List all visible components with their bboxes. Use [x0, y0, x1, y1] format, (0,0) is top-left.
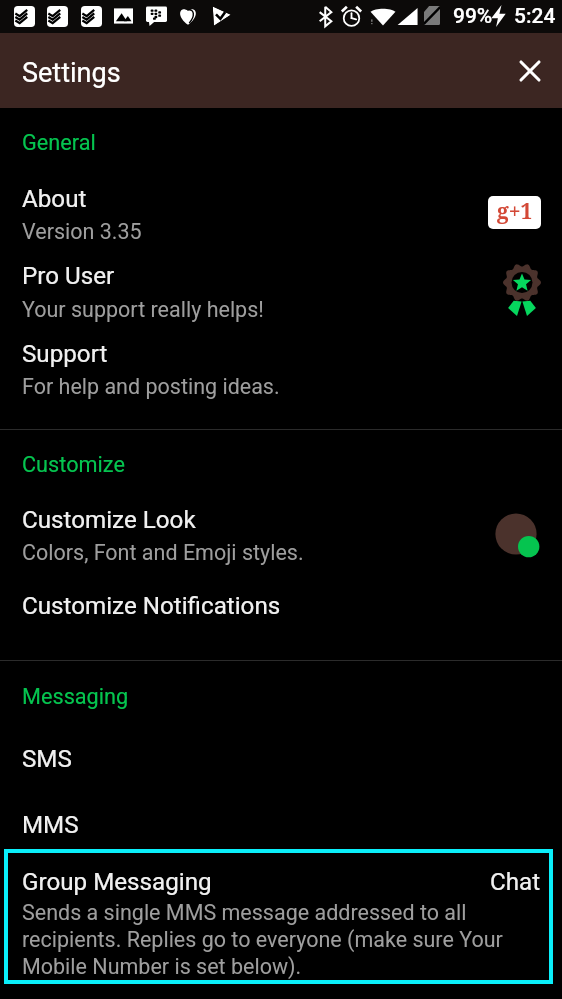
staticText: Version 3.35: [22, 219, 142, 244]
staticText: MMS: [22, 811, 79, 839]
staticText: g+1: [497, 197, 533, 226]
staticText: SMS: [22, 745, 72, 773]
staticText: Sends a single MMS message addressed to …: [22, 900, 514, 979]
button[interactable]: About: [0, 155, 562, 240]
button[interactable]: Close: [509, 50, 551, 92]
button[interactable]: Group Messaging: [4, 849, 553, 984]
button[interactable]: Theme colours: [493, 511, 543, 561]
staticText: Customize Notifications: [22, 592, 281, 620]
button[interactable]: Pro User: [0, 240, 562, 318]
staticText: Settings: [22, 57, 121, 89]
staticText: Group Messaging: [22, 868, 212, 896]
staticText: Chat: [490, 868, 541, 896]
button[interactable]: Customize Look: [0, 475, 562, 562]
button[interactable]: SMS: [0, 718, 562, 784]
staticText: Support: [22, 340, 108, 368]
button[interactable]: Support: [0, 318, 562, 400]
staticText: About: [22, 185, 87, 213]
staticText: General: [22, 130, 96, 155]
staticText: Pro User: [22, 262, 115, 290]
staticText: Colors, Font and Emoji styles.: [22, 540, 304, 565]
staticText: Your support really helps!: [22, 297, 264, 322]
staticText: Customize: [22, 452, 125, 477]
staticText: For help and posting ideas.: [22, 374, 280, 399]
button[interactable]: Google plus one: [488, 196, 541, 229]
staticText: 99%: [453, 4, 493, 29]
staticText: Messaging: [22, 684, 129, 709]
staticText: Customize Look: [22, 506, 196, 534]
button[interactable]: Customize Notifications: [0, 562, 562, 628]
button[interactable]: Pro badge: [500, 260, 546, 322]
staticText: 5:24: [514, 4, 556, 29]
button[interactable]: MMS: [0, 784, 562, 845]
